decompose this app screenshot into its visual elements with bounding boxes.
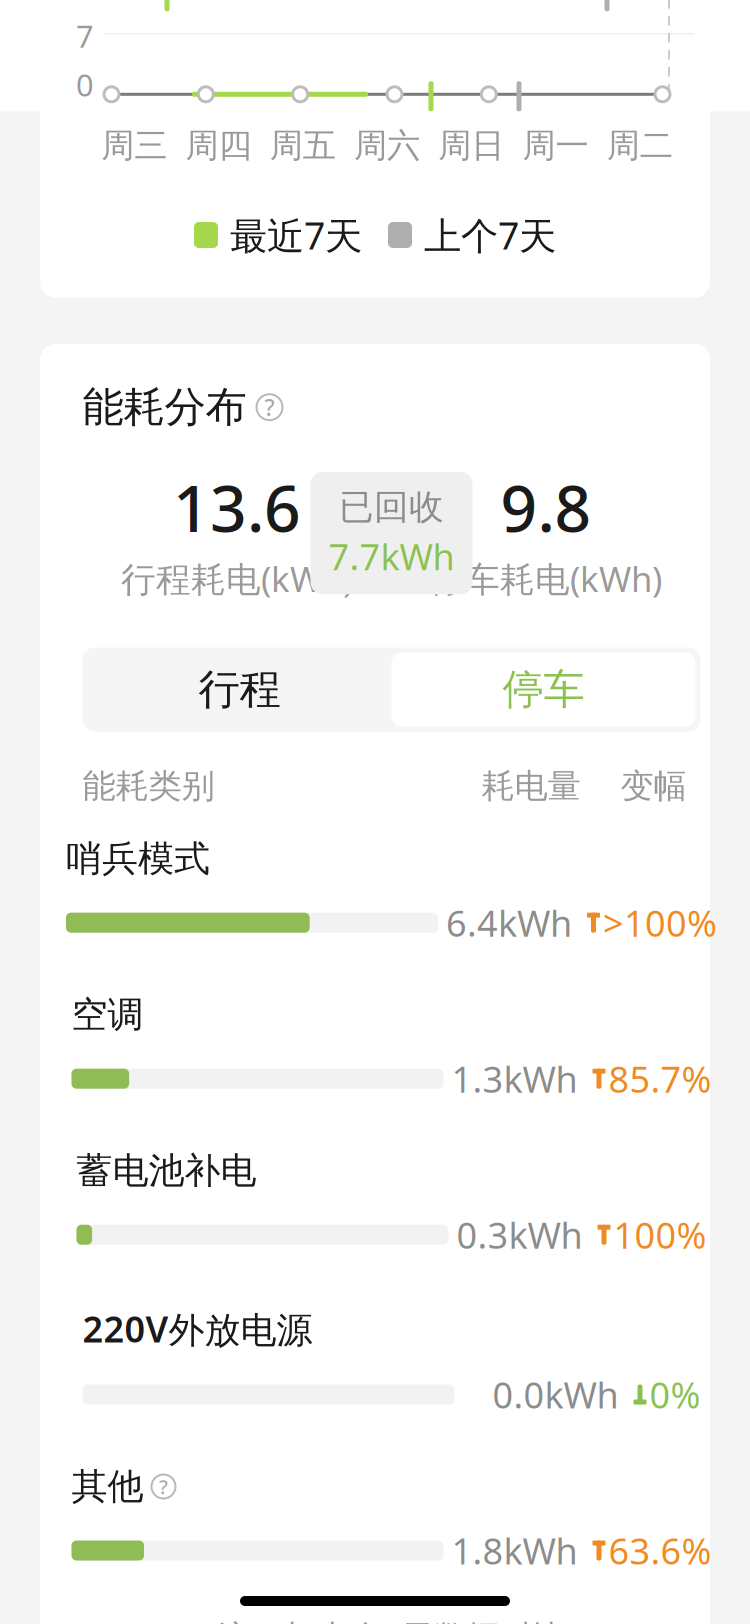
staticText: ? <box>159 1473 168 1500</box>
staticText: 9.8 <box>500 465 591 550</box>
staticText: 最近7天 <box>230 210 362 260</box>
staticText: 周五 <box>270 125 336 166</box>
staticText: 上个7天 <box>424 210 556 260</box>
staticText: 哨兵模式 <box>66 836 210 881</box>
staticText: 0 <box>76 64 94 105</box>
staticText: 变幅 <box>620 766 686 806</box>
staticText: 63.6% <box>608 1527 711 1574</box>
staticText: 周四 <box>185 125 251 166</box>
staticText: ? <box>264 392 274 422</box>
button[interactable]: 停车 <box>391 653 695 727</box>
staticText: 7 <box>76 16 94 56</box>
staticText: 已回收 <box>339 486 444 528</box>
staticText: 行程耗电(kWh) <box>121 556 353 602</box>
staticText: 6.4kWh <box>446 899 572 947</box>
staticText: 1.8kWh <box>451 1527 577 1574</box>
staticText: G6 粤AB***22 <box>56 51 298 99</box>
staticText: 停车耗电(kWh) <box>430 556 662 602</box>
staticText: 85.7% <box>608 1055 711 1103</box>
staticText: 最近7天（09.13~09.19） <box>375 26 658 125</box>
staticText: 0% <box>649 1371 700 1418</box>
staticText: 周一 <box>523 125 589 166</box>
staticText: 0.0kWh <box>492 1371 618 1418</box>
staticText: 1.3kWh <box>451 1055 577 1103</box>
button[interactable]: 最近7天（09.13~09.19） <box>375 16 694 135</box>
staticText: (注：与上个7天数据对比) <box>207 1614 576 1624</box>
staticText: 蓄电池补电 <box>76 1149 256 1193</box>
staticText: 周二 <box>607 125 673 166</box>
staticText: 周三 <box>101 125 167 166</box>
staticText: 7.7kWh <box>328 532 454 580</box>
staticText: 能耗类别 <box>82 766 214 806</box>
staticText: 空调 <box>71 993 143 1037</box>
staticText: 220V外放电源 <box>82 1305 312 1353</box>
staticText: 停车 <box>502 664 584 715</box>
staticText: 能耗分布 <box>82 382 246 433</box>
staticText: 周日 <box>438 125 504 166</box>
staticText: 其他 <box>71 1464 143 1509</box>
staticText: 13.6 <box>173 465 301 550</box>
staticText: >100% <box>603 899 717 947</box>
staticText: 周六 <box>354 125 420 166</box>
button[interactable]: G6 粤AB***22 <box>56 41 298 109</box>
button[interactable]: 行程 <box>87 653 391 727</box>
staticText: 100% <box>613 1211 706 1259</box>
staticText: 0.3kWh <box>456 1211 582 1259</box>
staticText: 耗电量 <box>481 766 580 806</box>
staticText: 行程 <box>198 664 280 715</box>
